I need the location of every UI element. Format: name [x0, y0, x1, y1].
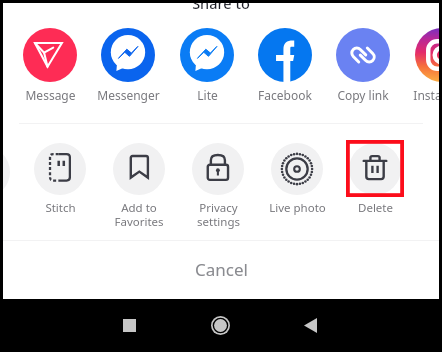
button[interactable]: Stitch — [21, 140, 99, 216]
button[interactable]: Lite — [168, 28, 246, 103]
button[interactable]: Instagram — [403, 28, 442, 103]
staticText: Live photo — [269, 200, 326, 216]
button[interactable]: Home — [198, 303, 243, 348]
staticText: Message — [25, 87, 76, 103]
staticText: Privacy settings — [197, 200, 240, 229]
button[interactable]: Delete — [336, 140, 414, 216]
button[interactable]: Privacy settings — [179, 140, 257, 229]
staticText: Copy link — [337, 87, 389, 103]
button[interactable]: Facebook — [246, 28, 324, 103]
staticText: Facebook — [258, 87, 312, 103]
staticText: Share to — [3, 0, 439, 13]
staticText: Add to Favorites — [114, 200, 164, 229]
button[interactable]: Back — [288, 303, 333, 348]
staticText: Messenger — [97, 87, 160, 103]
staticText: Lite — [197, 87, 218, 103]
button[interactable]: Live photo — [258, 140, 336, 216]
staticText: Cancel — [195, 258, 248, 281]
button[interactable]: Copy link — [324, 28, 402, 103]
staticText: Stitch — [45, 200, 76, 216]
button[interactable]: Recent apps — [107, 303, 152, 348]
button[interactable]: Add to Favorites — [100, 140, 178, 229]
staticText: Instagram — [413, 87, 442, 103]
staticText: Delete — [358, 200, 393, 216]
button[interactable]: Message — [11, 28, 89, 103]
button[interactable]: Cancel — [3, 241, 439, 299]
button[interactable]: Messenger — [89, 28, 167, 103]
